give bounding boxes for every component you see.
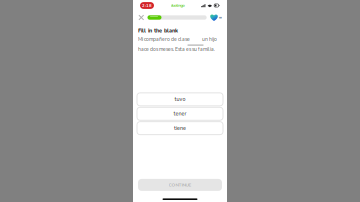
button[interactable]: Hearts: unlimited — [207, 14, 222, 21]
staticText: CONTINUE — [168, 182, 191, 188]
button[interactable]: tener — [137, 107, 223, 120]
staticText: Fill in the blank — [138, 27, 178, 34]
button[interactable]: CONTINUE — [138, 179, 222, 191]
staticText: Mi compañero de clase — [138, 36, 190, 43]
staticText: tener — [173, 110, 186, 117]
staticText: tiene — [174, 124, 186, 132]
button[interactable]: tiene — [137, 122, 223, 135]
staticText: un hijo — [202, 36, 217, 43]
staticText: ∞ — [219, 14, 222, 21]
staticText: duolingo — [171, 3, 185, 8]
staticText: 2:18 — [142, 3, 152, 8]
button[interactable]: tuvo — [137, 93, 223, 106]
button[interactable]: Close — [138, 14, 147, 21]
staticText: tuvo — [174, 96, 185, 103]
staticText: hace dos meses. Esta es su familia. — [138, 46, 215, 53]
